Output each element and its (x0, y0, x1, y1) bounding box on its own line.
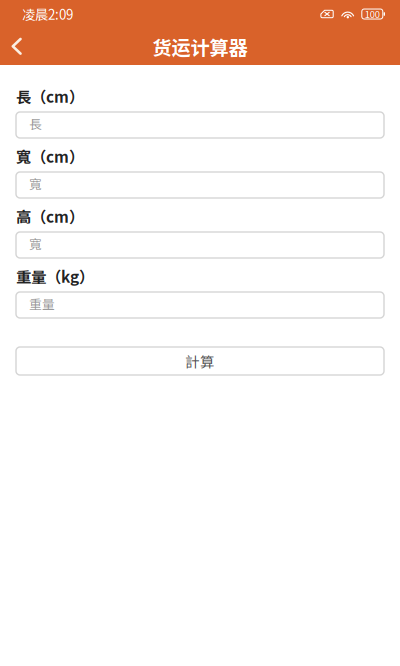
staticText: 長（cm） (16, 85, 84, 107)
button[interactable]: 寬 (16, 232, 384, 258)
staticText: 計算 (185, 350, 215, 372)
staticText: 重量（kg） (16, 265, 94, 287)
staticText: 寬 (29, 234, 42, 253)
staticText: 凌晨2:09 (22, 4, 73, 24)
staticText: 高（cm） (16, 205, 84, 227)
staticText: 重量 (29, 294, 55, 313)
button[interactable]: 計算 (16, 347, 384, 375)
button[interactable]: Back (0, 27, 34, 65)
staticText: 長 (29, 114, 42, 133)
staticText: 寬（cm） (16, 145, 84, 167)
staticText: 货运计算器 (152, 32, 247, 60)
button[interactable]: 長 (16, 112, 384, 138)
button[interactable]: 重量 (16, 292, 384, 318)
staticText: 100 (365, 7, 380, 21)
staticText: 寬 (29, 174, 42, 193)
button[interactable]: 寬 (16, 172, 384, 198)
